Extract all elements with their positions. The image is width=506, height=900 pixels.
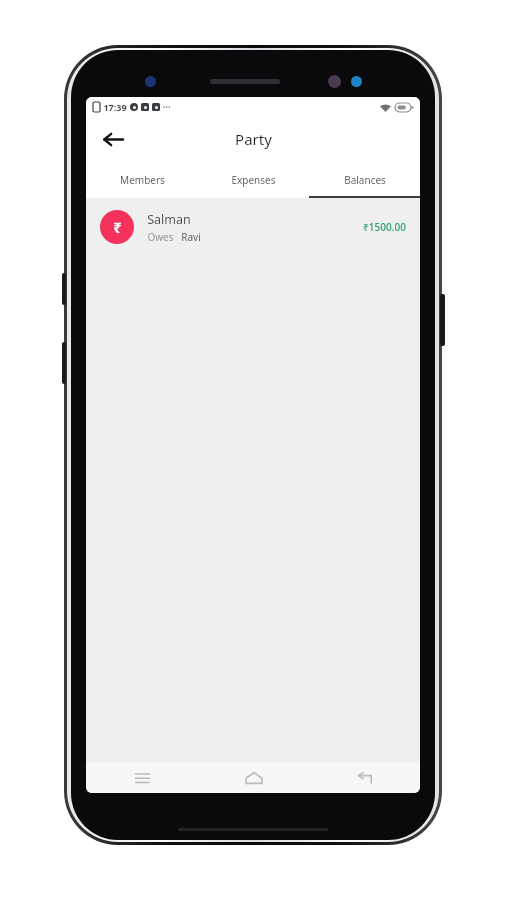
staticText: Balances bbox=[344, 173, 386, 187]
staticText: ₹ bbox=[113, 217, 122, 237]
button[interactable]: Balances bbox=[309, 161, 420, 198]
button[interactable]: Back bbox=[96, 122, 130, 156]
button[interactable]: ₹ bbox=[86, 198, 420, 256]
button[interactable]: Expenses bbox=[198, 161, 309, 198]
button[interactable]: Recents bbox=[86, 763, 198, 793]
staticText: Ravi bbox=[181, 230, 201, 244]
staticText: Expenses bbox=[231, 173, 276, 187]
button[interactable]: Back bbox=[309, 763, 420, 793]
staticText: Owes bbox=[147, 230, 174, 244]
staticText: 17:39 bbox=[103, 101, 127, 113]
staticText: ₹1500.00 bbox=[363, 220, 406, 234]
staticText: Members bbox=[120, 173, 165, 187]
button[interactable]: Members bbox=[86, 161, 198, 198]
staticText: Salman bbox=[147, 211, 191, 228]
staticText: Party bbox=[235, 129, 272, 149]
button[interactable]: Home bbox=[198, 763, 309, 793]
